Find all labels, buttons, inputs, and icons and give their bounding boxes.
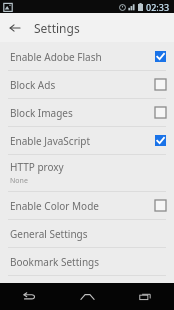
staticText: None — [10, 176, 28, 186]
staticText: HTTP proxy — [10, 160, 64, 174]
staticText: 02:33 — [146, 1, 170, 13]
staticText: Block Ads — [10, 78, 155, 92]
staticText: Enable Adobe Flash — [10, 50, 155, 64]
button[interactable]: Enable Adobe Flash — [0, 43, 174, 70]
staticText: General Settings — [10, 227, 88, 241]
staticText: Settings — [34, 20, 80, 36]
button[interactable]: Home — [58, 283, 116, 310]
button[interactable]: Enable Color Mode — [0, 192, 174, 219]
button[interactable]: Enable JavaScript — [0, 127, 174, 154]
button[interactable]: Bookmark Settings — [0, 248, 174, 275]
button[interactable]: Block Ads — [0, 71, 174, 98]
staticText: Block Images — [10, 106, 155, 120]
staticText: Bookmark Settings — [10, 255, 100, 269]
button[interactable]: Back — [0, 283, 58, 310]
button[interactable]: HTTP proxy — [0, 155, 174, 191]
button[interactable]: General Settings — [0, 220, 174, 247]
button[interactable]: Back — [0, 13, 29, 42]
button[interactable]: Recent apps — [116, 283, 174, 310]
staticText: Enable JavaScript — [10, 134, 155, 148]
staticText: Enable Color Mode — [10, 199, 155, 213]
button[interactable]: Block Images — [0, 99, 174, 126]
